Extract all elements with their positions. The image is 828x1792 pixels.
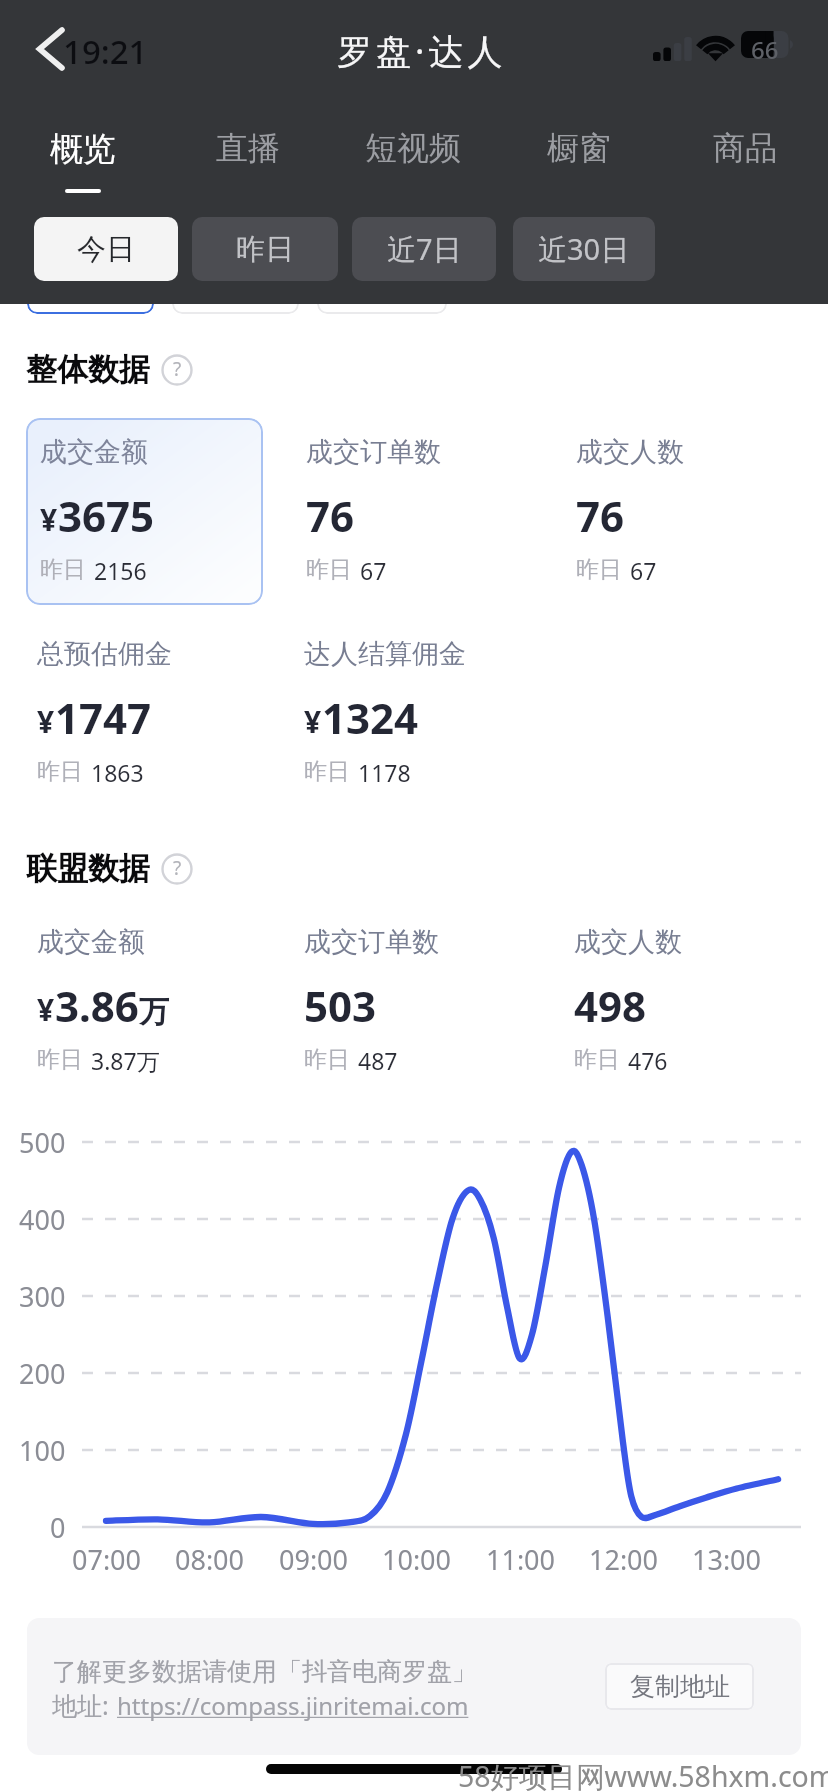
staticText: ¥ <box>40 499 58 540</box>
staticText: 成交人数 <box>576 435 684 469</box>
staticText: 12:00 <box>589 1541 659 1578</box>
staticText: 短视频 <box>365 128 461 168</box>
staticText: 58好项目网www.58hxm.com <box>458 1757 828 1792</box>
staticText: ¥ <box>37 701 55 742</box>
staticText: 昨日 <box>576 555 622 584</box>
staticText: 1863 <box>91 757 144 788</box>
staticText: 总预估佣金 <box>37 637 172 671</box>
staticText: 3.87万 <box>91 1045 160 1076</box>
button[interactable]: 直播 <box>165 128 330 208</box>
staticText: 66 <box>751 33 779 66</box>
button[interactable]: 橱窗 <box>496 128 662 208</box>
button[interactable]: Help <box>161 354 193 386</box>
staticText: 08:00 <box>175 1541 245 1578</box>
staticText: 成交订单数 <box>304 925 439 959</box>
button[interactable] <box>317 268 447 314</box>
staticText: 2156 <box>94 555 147 586</box>
staticText: 200 <box>19 1355 66 1392</box>
staticText: 达人结算佣金 <box>304 637 466 671</box>
button[interactable]: 近30日 <box>513 217 655 281</box>
staticText: 3675 <box>58 487 155 544</box>
staticText: 概览 <box>50 128 116 170</box>
staticText: 近7日 <box>387 229 462 269</box>
staticText: 10:00 <box>382 1541 452 1578</box>
staticText: 300 <box>19 1278 66 1315</box>
staticText: 11:00 <box>486 1541 556 1578</box>
button[interactable]: 昨日 <box>192 217 338 281</box>
staticText: ? <box>173 356 182 382</box>
button[interactable] <box>27 268 154 314</box>
staticText: 成交金额 <box>37 925 145 959</box>
button[interactable]: 复制地址 <box>605 1663 754 1710</box>
staticText: 昨日 <box>236 231 294 268</box>
staticText: 400 <box>19 1201 66 1238</box>
button[interactable]: 今日 <box>34 217 178 281</box>
button[interactable]: 概览 <box>0 128 165 208</box>
staticText: 1324 <box>322 689 419 746</box>
staticText: 直播 <box>216 128 280 168</box>
staticText: 13:00 <box>692 1541 762 1578</box>
staticText: 67 <box>630 555 657 586</box>
staticText: 昨日 <box>304 1045 350 1074</box>
staticText: 整体数据 <box>26 350 150 389</box>
button[interactable] <box>26 418 263 605</box>
staticText: 19:21 <box>63 29 148 74</box>
staticText: 近30日 <box>538 229 630 269</box>
staticText: ? <box>173 855 182 881</box>
staticText: ¥ <box>304 701 322 742</box>
staticText: ¥ <box>37 989 55 1030</box>
staticText: 503 <box>304 977 377 1034</box>
staticText: 3.86 <box>55 977 139 1034</box>
staticText: 76 <box>306 487 355 544</box>
staticText: 1178 <box>358 757 411 788</box>
staticText: 联盟数据 <box>26 849 150 888</box>
staticText: 0 <box>50 1509 66 1546</box>
staticText: 地址: <box>52 1688 109 1722</box>
staticText: 昨日 <box>574 1045 620 1074</box>
button[interactable]: Back <box>26 23 76 75</box>
staticText: 1747 <box>55 689 152 746</box>
button[interactable]: Help <box>161 853 193 885</box>
staticText: 商品 <box>713 128 777 168</box>
staticText: 07:00 <box>72 1541 142 1578</box>
staticText: 67 <box>360 555 387 586</box>
staticText: 昨日 <box>37 1045 83 1074</box>
staticText: 昨日 <box>40 555 86 584</box>
staticText: 复制地址 <box>630 1671 730 1702</box>
button[interactable]: 近7日 <box>352 217 496 281</box>
staticText: 成交订单数 <box>306 435 441 469</box>
staticText: 487 <box>358 1045 398 1076</box>
staticText: 了解更多数据请使用「抖音电商罗盘」 <box>52 1656 477 1687</box>
staticText: 橱窗 <box>547 128 611 168</box>
staticText: 476 <box>628 1045 668 1076</box>
staticText: 昨日 <box>37 757 83 786</box>
staticText: 498 <box>574 977 647 1034</box>
staticText: 罗盘·达人 <box>337 27 507 75</box>
button[interactable] <box>172 268 299 314</box>
staticText: https://compass.jinritemai.com <box>117 1689 469 1722</box>
staticText: 成交金额 <box>40 435 148 469</box>
staticText: 76 <box>576 487 625 544</box>
staticText: 100 <box>19 1432 66 1469</box>
staticText: 500 <box>19 1124 66 1161</box>
staticText: 昨日 <box>304 757 350 786</box>
staticText: 今日 <box>77 231 135 268</box>
staticText: 成交人数 <box>574 925 682 959</box>
button[interactable]: 商品 <box>662 128 828 208</box>
staticText: 昨日 <box>306 555 352 584</box>
staticText: 万 <box>139 993 169 1031</box>
button[interactable]: 短视频 <box>330 128 496 208</box>
staticText: 09:00 <box>279 1541 349 1578</box>
